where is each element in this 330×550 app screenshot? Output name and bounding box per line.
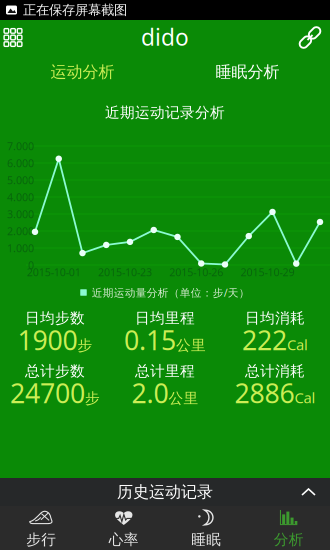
staticText: 日均步数 <box>25 309 85 327</box>
staticText: dido <box>141 22 189 52</box>
staticText: 2.000 <box>7 224 34 238</box>
staticText: 2015-10-23 <box>98 265 152 279</box>
staticText: 2015-10-29 <box>240 265 294 279</box>
staticText: 0 <box>28 258 34 272</box>
button[interactable]: 运动分析 <box>0 54 165 89</box>
button[interactable]: 心率 <box>82 506 165 550</box>
staticText: 总计步数 <box>25 362 85 380</box>
staticText: 5.000 <box>7 173 34 187</box>
staticText: 222 <box>242 322 287 358</box>
staticText: 心率 <box>109 530 139 548</box>
staticText: 步 <box>85 389 100 407</box>
staticText: 2015-10-26 <box>169 265 223 279</box>
staticText: 3.000 <box>7 207 34 221</box>
staticText: 公里 <box>176 336 206 354</box>
staticText: 总计里程 <box>135 362 195 380</box>
staticText: 7.000 <box>7 139 34 153</box>
button[interactable]: 步行 <box>0 506 82 550</box>
staticText: 24700 <box>10 375 85 411</box>
staticText: 步 <box>77 336 92 354</box>
staticText: 步行 <box>26 530 56 548</box>
button[interactable]: Connect device <box>295 22 325 52</box>
staticText: 睡眠 <box>191 530 221 548</box>
staticText: 睡眠分析 <box>215 62 279 82</box>
staticText: 近期运动量分析（单位：步/天） <box>92 285 250 300</box>
staticText: 总计消耗 <box>245 362 305 380</box>
button[interactable]: 睡眠 <box>165 506 247 550</box>
staticText: 2.0 <box>131 375 168 411</box>
staticText: 公里 <box>168 389 198 407</box>
staticText: 2886 <box>234 375 294 411</box>
staticText: 1.000 <box>7 241 34 255</box>
staticText: 日均里程 <box>135 309 195 327</box>
staticText: 日均消耗 <box>245 309 305 327</box>
staticText: 1900 <box>17 322 77 358</box>
staticText: 正在保存屏幕截图 <box>23 2 127 18</box>
staticText: 4.000 <box>7 190 34 204</box>
button[interactable]: 分析 <box>247 506 330 550</box>
staticText: 分析 <box>274 530 304 548</box>
staticText: 运动分析 <box>50 62 114 82</box>
button[interactable]: 睡眠分析 <box>165 54 330 89</box>
button[interactable]: 历史运动记录 <box>0 478 330 506</box>
button[interactable]: Menu <box>0 22 28 52</box>
staticText: 近期运动记录分析 <box>105 103 225 121</box>
staticText: 2015-10-01 <box>27 265 81 279</box>
staticText: 0.15 <box>124 322 176 358</box>
staticText: 历史运动记录 <box>117 482 213 502</box>
staticText: 6.000 <box>7 156 34 170</box>
staticText: Cal <box>287 335 308 354</box>
staticText: Cal <box>294 388 315 407</box>
